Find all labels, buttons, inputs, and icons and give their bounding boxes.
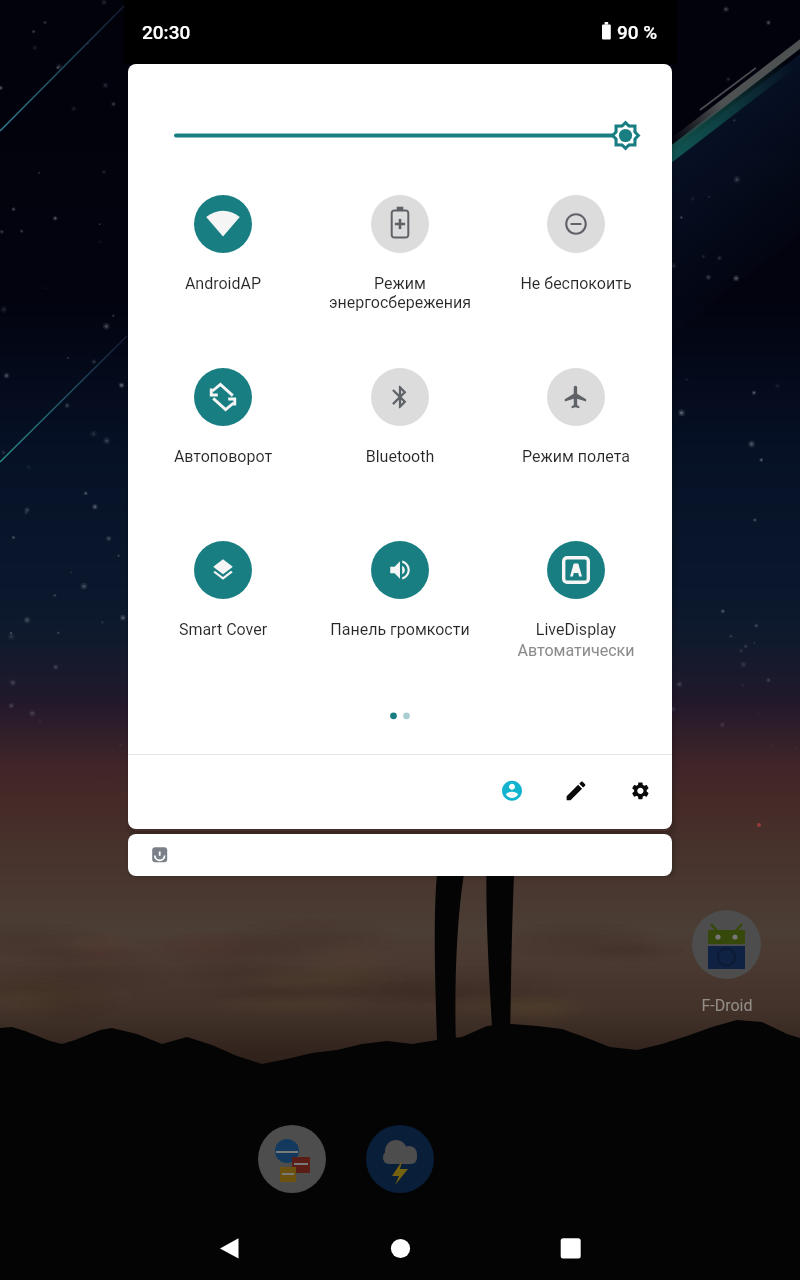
staticText: Панель громкости	[312, 620, 488, 732]
staticText: Smart Cover	[135, 620, 311, 732]
staticText: LiveDisplay	[488, 620, 664, 732]
button[interactable]: Home	[360, 1208, 440, 1280]
button[interactable]: Автоповорот	[135, 364, 311, 476]
staticText: Автоматически	[488, 641, 664, 753]
button[interactable]: Settings	[616, 767, 664, 815]
staticText: 90 %	[617, 21, 697, 1280]
staticText: Режим энергосбережения	[312, 274, 488, 386]
staticText: Не беспокоить	[488, 274, 664, 386]
staticText: Bluetooth	[312, 447, 488, 559]
button[interactable]: Bluetooth	[312, 364, 488, 476]
button[interactable]: Режим энергосбережения	[312, 191, 488, 303]
button[interactable]: Не беспокоить	[488, 191, 664, 303]
staticText: Режим полета	[488, 447, 664, 559]
button[interactable]: Режим полета	[488, 364, 664, 476]
button[interactable]: Weather	[366, 1125, 434, 1193]
staticText: AndroidAP	[135, 274, 311, 386]
button[interactable]: Панель громкости	[312, 537, 488, 649]
button[interactable]: LiveDisplay	[488, 537, 664, 649]
button[interactable]: User	[488, 767, 536, 815]
button[interactable]: Back	[189, 1208, 269, 1280]
button[interactable]: Smart Cover	[135, 537, 311, 649]
button[interactable]: Contacts	[258, 1125, 326, 1193]
button[interactable]: Edit tiles	[552, 767, 600, 815]
button[interactable]: Notification	[128, 834, 672, 876]
button[interactable]: Brightness	[160, 112, 656, 160]
staticText: Автоповорот	[135, 447, 311, 559]
button[interactable]: Recents	[531, 1208, 611, 1280]
staticText: 20:30	[142, 21, 262, 1280]
button[interactable]: AndroidAP	[135, 191, 311, 303]
staticText: F-Droid	[672, 996, 782, 1280]
button[interactable]: F-Droid	[692, 910, 761, 979]
